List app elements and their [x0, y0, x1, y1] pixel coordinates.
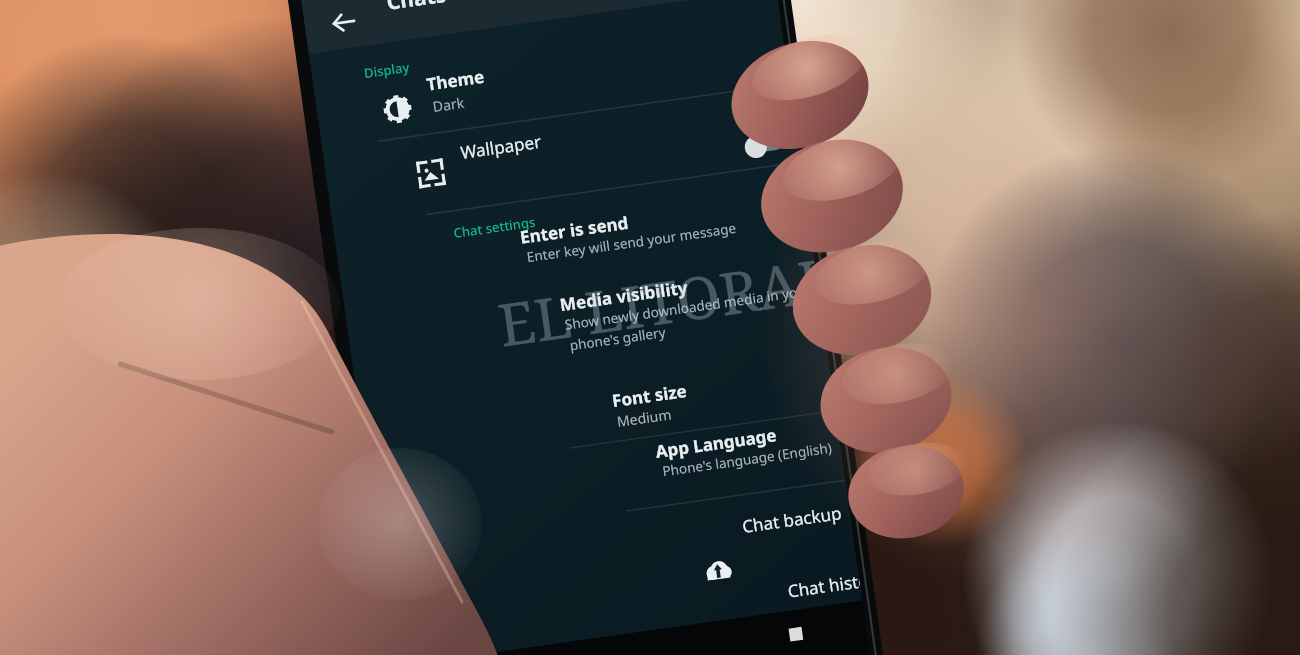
button[interactable]	[344, 66, 774, 148]
button[interactable]: Wallpaper dimming toggle	[686, 186, 770, 238]
button[interactable]	[476, 470, 880, 544]
button[interactable]	[516, 550, 920, 634]
button[interactable]	[396, 242, 800, 312]
button[interactable]: Enter is send toggle	[728, 254, 794, 304]
button[interactable]	[352, 150, 782, 234]
button[interactable]	[446, 416, 850, 488]
button[interactable]	[416, 316, 820, 410]
button[interactable]: Back	[316, 2, 382, 56]
